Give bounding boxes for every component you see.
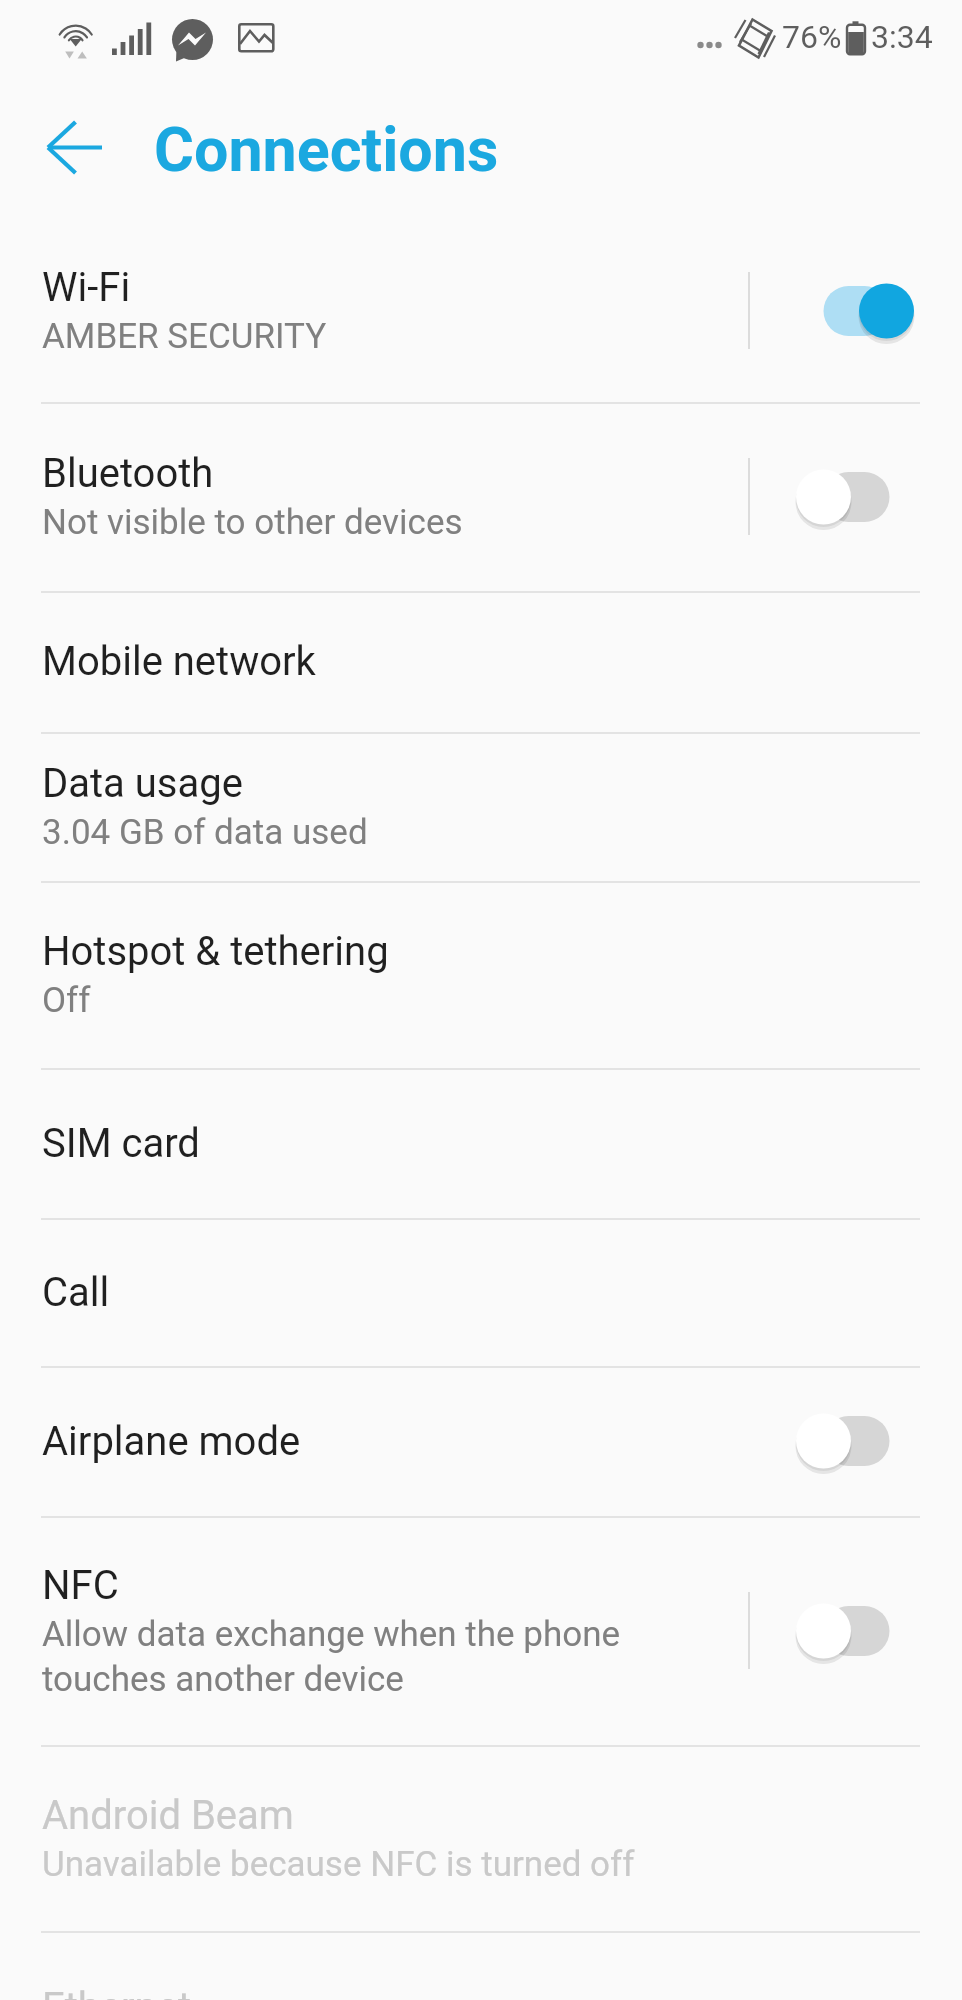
- button[interactable]: Mobile network: [0, 592, 962, 731]
- button[interactable]: Turn on: [796, 468, 914, 526]
- staticText: Connections: [154, 114, 499, 185]
- button[interactable]: Turn off: [796, 282, 914, 340]
- button[interactable]: Turn on: [796, 1412, 914, 1470]
- button[interactable]: Android Beam: [0, 1746, 962, 1930]
- button[interactable]: Turn on: [796, 1602, 914, 1660]
- staticText: Airplane mode: [42, 1418, 301, 1465]
- staticText: 3:34: [871, 18, 933, 56]
- button[interactable]: Data usage: [0, 733, 962, 880]
- button[interactable]: Hotspot & tethering: [0, 882, 962, 1067]
- staticText: AMBER SECURITY: [42, 316, 327, 357]
- staticText: Allow data exchange when the phone touch…: [42, 1614, 621, 1699]
- button[interactable]: Bluetooth: [0, 403, 962, 590]
- staticText: Bluetooth: [42, 450, 214, 497]
- staticText: Off: [42, 980, 91, 1021]
- staticText: Mobile network: [42, 638, 316, 685]
- staticText: NFC: [42, 1562, 119, 1609]
- staticText: Android Beam: [42, 1792, 294, 1839]
- button[interactable]: Airplane mode: [0, 1367, 962, 1515]
- staticText: 76%: [782, 18, 842, 56]
- staticText: 3.04 GB of data used: [42, 812, 368, 853]
- staticText: SIM card: [42, 1120, 200, 1167]
- button[interactable]: Call: [0, 1219, 962, 1365]
- button[interactable]: SIM card: [0, 1069, 962, 1217]
- staticText: Not visible to other devices: [42, 502, 463, 543]
- button[interactable]: Back: [24, 110, 128, 190]
- button[interactable]: NFC: [0, 1517, 962, 1744]
- staticText: Ethernet: [42, 1984, 192, 2000]
- staticText: Call: [42, 1269, 110, 1316]
- staticText: Wi-Fi: [42, 264, 131, 311]
- staticText: Data usage: [42, 760, 243, 807]
- staticText: Hotspot & tethering: [42, 928, 389, 975]
- button[interactable]: Wi-Fi: [0, 220, 962, 401]
- button[interactable]: Ethernet: [0, 1932, 962, 2000]
- staticText: Unavailable because NFC is turned off: [42, 1844, 635, 1885]
